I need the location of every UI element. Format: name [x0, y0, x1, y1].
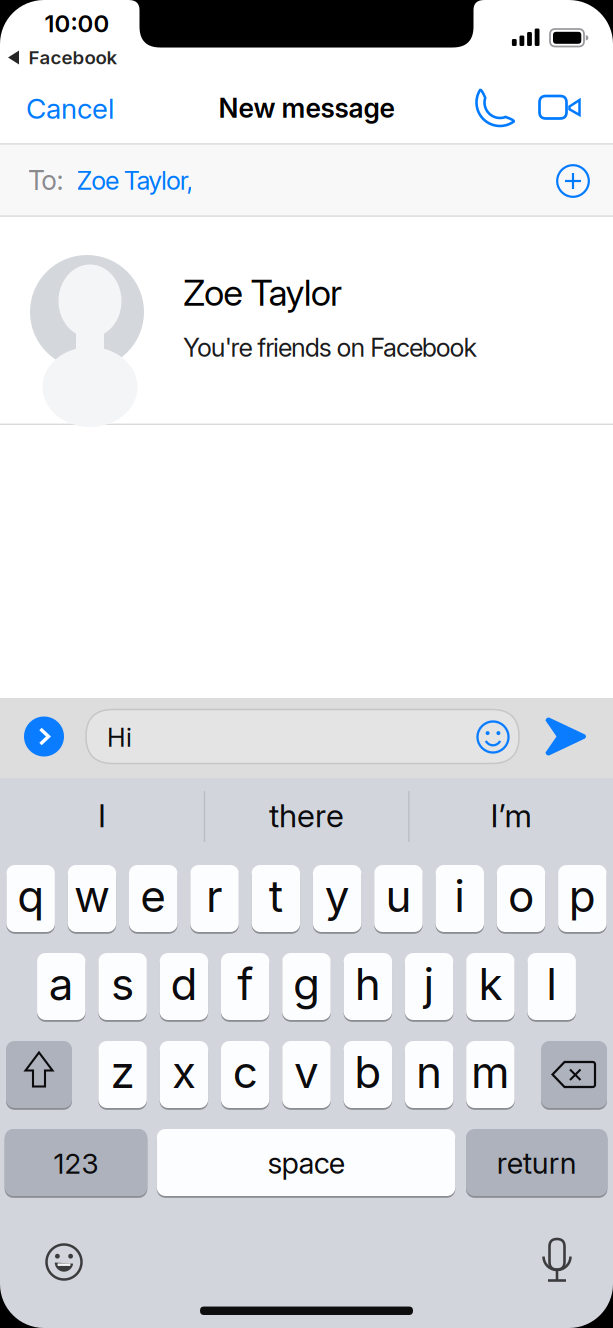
staticText: e [140, 870, 166, 922]
button[interactable]: b [343, 1041, 392, 1108]
staticText: y [325, 870, 350, 922]
staticText: z [111, 1046, 135, 1098]
staticText: s [111, 958, 134, 1010]
button[interactable]: 123 [5, 1129, 147, 1196]
staticText: space [267, 1146, 345, 1180]
staticText: I [98, 797, 106, 834]
button[interactable]: p [558, 865, 607, 932]
button[interactable] [473, 87, 513, 127]
button[interactable]: s [98, 953, 147, 1020]
staticText: Zoe Taylor, [76, 165, 193, 195]
button[interactable]: q [6, 865, 55, 932]
staticText: To: [28, 164, 63, 196]
button[interactable]: h [344, 953, 392, 1020]
staticText: New message [218, 92, 394, 124]
staticText: q [17, 870, 44, 922]
staticText: t [269, 870, 283, 922]
staticText: a [49, 958, 74, 1010]
button[interactable]: Zoe Taylor, [76, 165, 193, 195]
button[interactable]: v [282, 1041, 331, 1108]
button[interactable]: o [497, 865, 545, 932]
staticText: c [233, 1046, 258, 1098]
button[interactable]: I [12, 785, 192, 845]
button[interactable] [539, 1238, 574, 1284]
button[interactable]: Hi [85, 708, 520, 764]
button[interactable]: m [466, 1041, 515, 1108]
staticText: f [237, 958, 253, 1010]
staticText: i [454, 870, 465, 922]
button[interactable]: there [216, 785, 396, 845]
staticText: o [508, 870, 534, 922]
staticText: there [269, 797, 344, 834]
button[interactable]: k [466, 953, 515, 1020]
button[interactable]: a [37, 953, 85, 1020]
staticText: d [170, 958, 197, 1010]
staticText: v [294, 1046, 319, 1098]
staticText: w [74, 870, 110, 922]
button[interactable] [45, 1243, 83, 1281]
button[interactable]: y [313, 865, 361, 932]
button[interactable]: return [466, 1129, 607, 1196]
button[interactable]: I’m [421, 785, 601, 845]
button[interactable]: l [527, 953, 576, 1020]
button[interactable]: w [68, 865, 116, 932]
staticText: return [497, 1146, 577, 1180]
staticText: You're friends on Facebook [183, 332, 477, 362]
button[interactable] [6, 1041, 72, 1108]
staticText: h [355, 958, 381, 1010]
staticText: Zoe Taylor [183, 271, 342, 314]
button[interactable]: i [435, 865, 484, 932]
staticText: 10:00 [44, 9, 109, 38]
staticText: 123 [53, 1147, 98, 1180]
button[interactable] [556, 164, 590, 198]
staticText: p [569, 870, 596, 922]
staticText: k [478, 958, 502, 1010]
staticText: x [172, 1046, 196, 1098]
button[interactable] [538, 92, 582, 122]
staticText: Facebook [28, 46, 117, 68]
staticText: g [293, 958, 320, 1010]
button[interactable]: d [160, 953, 208, 1020]
button[interactable]: g [282, 953, 331, 1020]
button[interactable]: n [405, 1041, 453, 1108]
button[interactable]: x [160, 1041, 208, 1108]
button[interactable] [541, 1041, 607, 1108]
button[interactable]: c [221, 1041, 269, 1108]
button[interactable]: t [252, 865, 300, 932]
staticText: b [354, 1046, 381, 1098]
staticText: j [424, 958, 435, 1010]
button[interactable]: r [190, 865, 239, 932]
button[interactable]: f [221, 953, 269, 1020]
staticText: n [416, 1046, 442, 1098]
staticText: u [385, 870, 411, 922]
staticText: I’m [490, 797, 531, 834]
button[interactable] [544, 717, 587, 756]
button[interactable]: u [374, 865, 423, 932]
staticText: m [471, 1046, 510, 1098]
staticText: Cancel [26, 92, 114, 125]
staticText: l [546, 958, 557, 1010]
button[interactable]: j [405, 953, 453, 1020]
button[interactable]: z [98, 1041, 147, 1108]
button[interactable] [24, 716, 64, 756]
button[interactable]: space [157, 1129, 455, 1196]
staticText: r [206, 870, 223, 922]
staticText: Hi [107, 722, 132, 752]
button[interactable]: Zoe Taylor [0, 217, 613, 424]
button[interactable]: Cancel [26, 92, 114, 125]
button[interactable]: e [129, 865, 177, 932]
